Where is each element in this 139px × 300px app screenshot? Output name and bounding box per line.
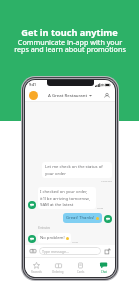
button[interactable]: Camera: [29, 247, 37, 255]
staticText: 12:45 PM: [101, 179, 112, 182]
staticText: Type message...: [42, 249, 69, 254]
button[interactable]: Send attachment: [103, 247, 111, 255]
staticText: Let me check on the status of your order: [45, 164, 109, 176]
staticText: A Great Restaurant: [48, 92, 88, 98]
staticText: Communicate in-app with your reps and le…: [14, 37, 126, 55]
staticText: I checked on your order, it'll be arrivi…: [40, 189, 94, 207]
staticText: Cards: [77, 270, 85, 274]
button[interactable]: Contacts: [102, 91, 111, 100]
staticText: 12:46: [97, 206, 104, 209]
button[interactable]: Cards: [69, 258, 92, 277]
button[interactable]: Profile: [29, 91, 38, 100]
button[interactable]: A Great Restaurant: [46, 91, 94, 99]
staticText: No problem!: [40, 235, 65, 241]
staticText: Rewards: [31, 270, 42, 274]
button[interactable]: Type message...: [39, 247, 101, 255]
staticText: Great! Thanks!: [66, 215, 95, 221]
staticText: Chat: [101, 270, 107, 274]
button[interactable]: Ordering: [47, 258, 69, 277]
staticText: 9:41: [29, 82, 37, 87]
button[interactable]: Chat: [92, 258, 115, 277]
staticText: 8 minutes: [38, 226, 51, 230]
staticText: Get in touch anytime: [21, 26, 118, 39]
staticText: Ordering: [52, 270, 64, 274]
button[interactable]: Rewards: [25, 258, 47, 277]
staticText: 12:47: [72, 240, 79, 243]
